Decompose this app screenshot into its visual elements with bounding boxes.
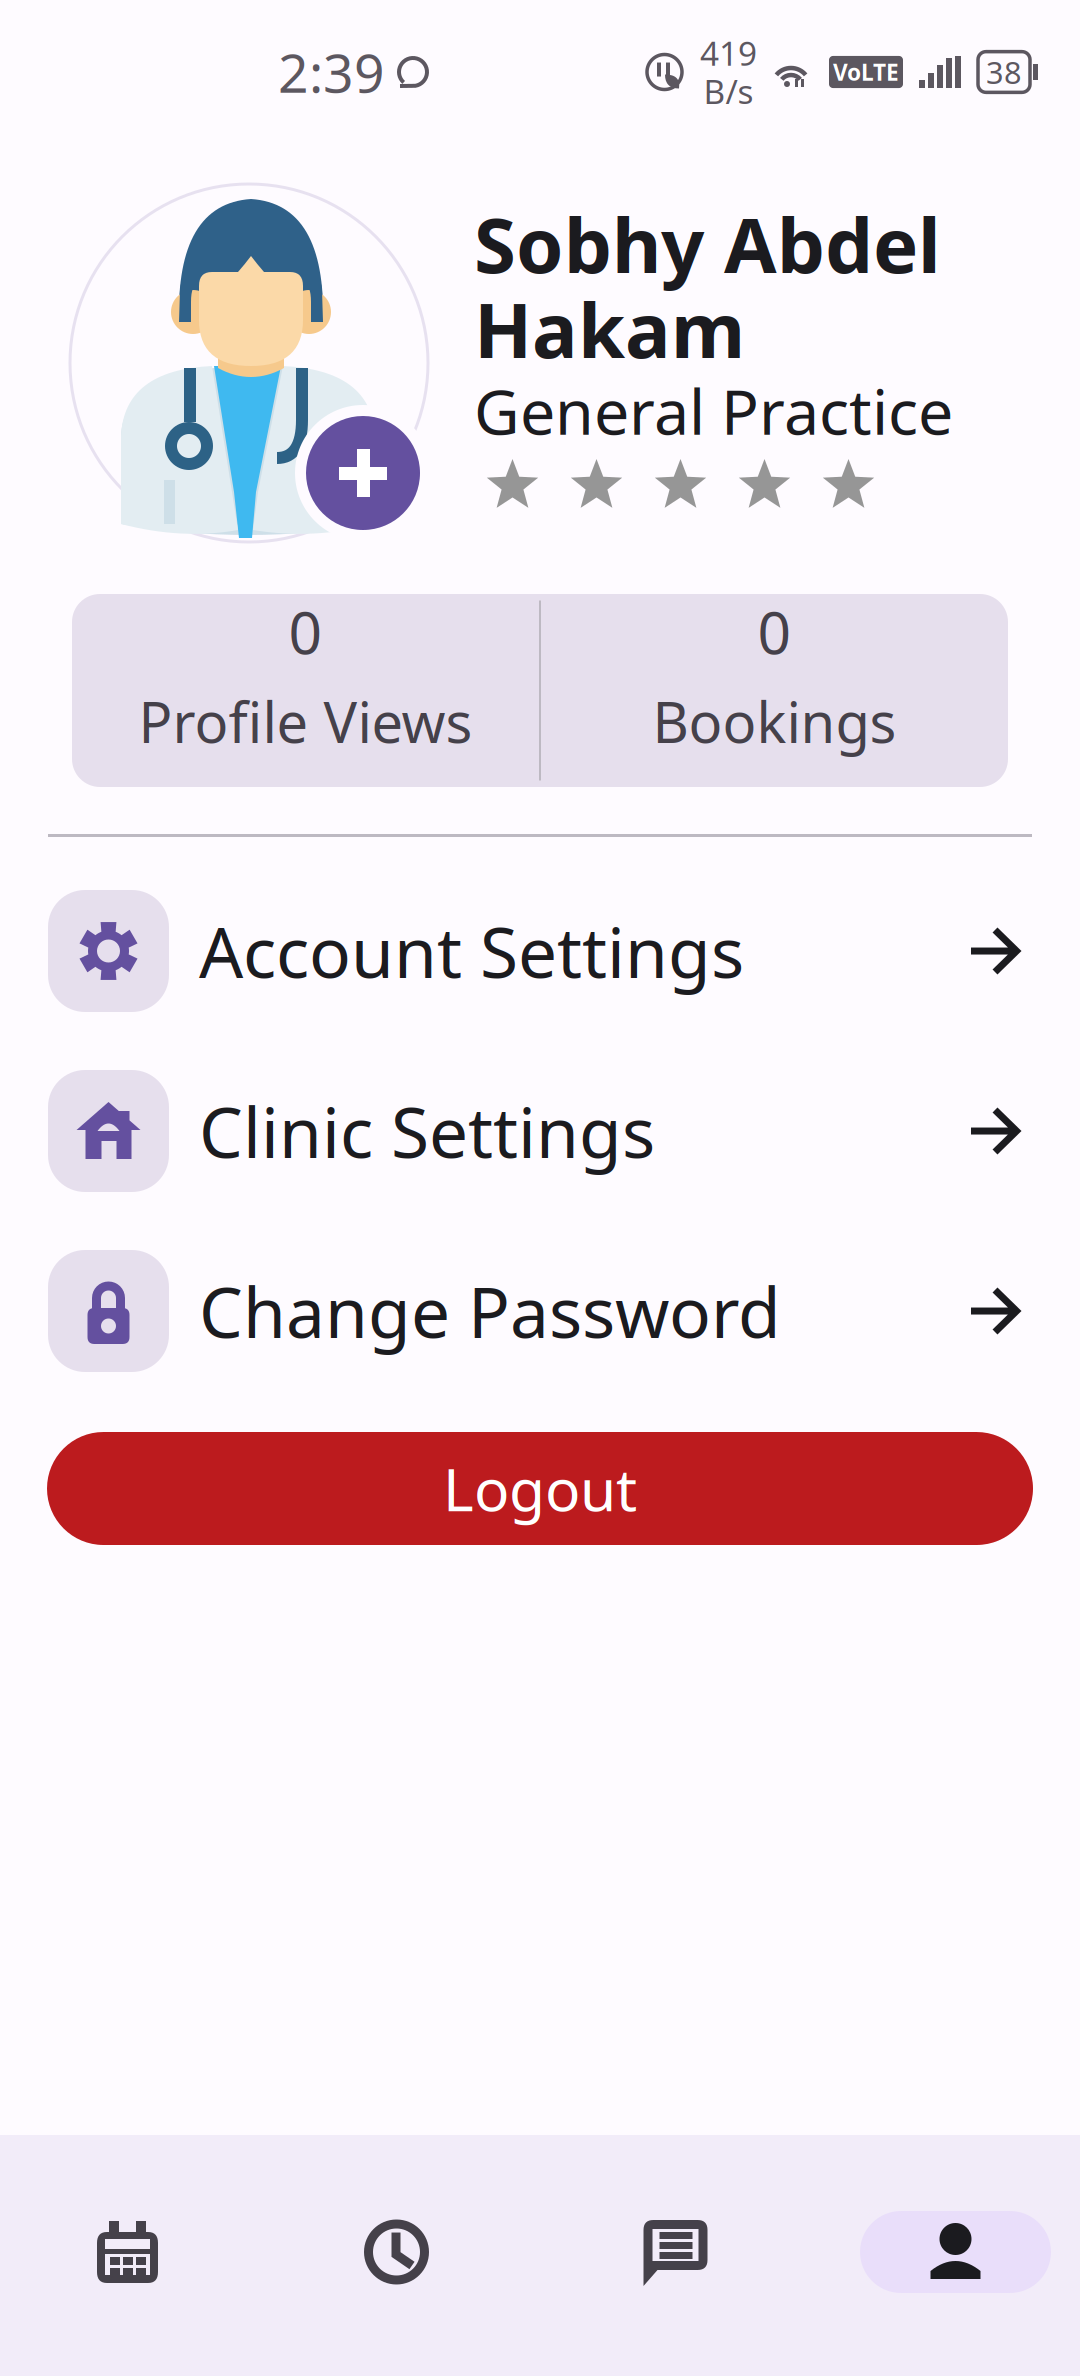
button[interactable]: Appointments — [0, 2204, 255, 2300]
staticText: B/s — [703, 69, 753, 113]
staticText: 38 — [986, 52, 1022, 92]
button[interactable]: Profile — [860, 2204, 1051, 2300]
staticText: 0 — [288, 593, 322, 670]
button[interactable]: Messages — [538, 2204, 813, 2300]
staticText: 0 — [757, 593, 791, 670]
button[interactable]: Account Settings — [0, 861, 1080, 1041]
button[interactable]: Change Password — [0, 1221, 1080, 1401]
staticText: 419 — [700, 31, 757, 75]
staticText: Logout — [443, 1449, 637, 1527]
button[interactable]: History — [255, 2204, 538, 2300]
staticText: Change Password — [199, 1265, 781, 1357]
staticText: Sobhy Abdel — [474, 193, 941, 294]
button[interactable]: Clinic Settings — [0, 1041, 1080, 1221]
staticText: Clinic Settings — [199, 1085, 655, 1177]
button[interactable]: Logout — [47, 1432, 1033, 1545]
staticText: Profile Views — [138, 684, 472, 758]
staticText: General Practice — [474, 369, 953, 452]
staticText: Account Settings — [199, 905, 744, 997]
staticText: 2:39 — [278, 37, 385, 107]
staticText: VoLTE — [833, 57, 899, 87]
staticText: Bookings — [652, 684, 896, 758]
staticText: Hakam — [474, 278, 745, 379]
